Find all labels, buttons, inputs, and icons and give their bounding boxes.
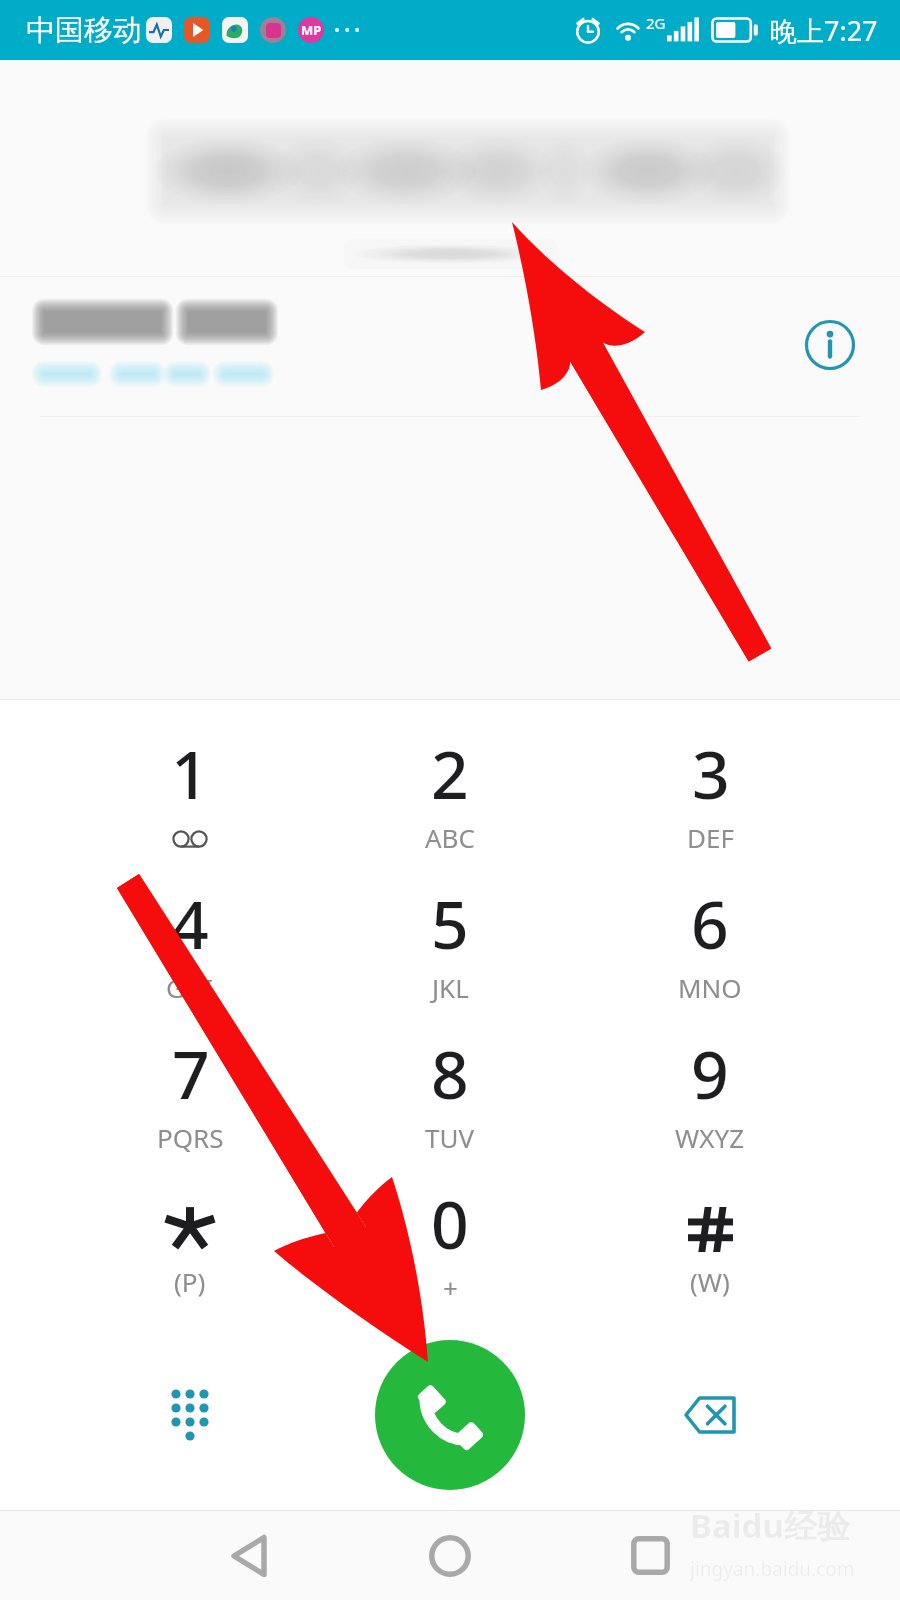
button[interactable]: Contact details (780, 295, 880, 395)
button[interactable]: 4 (60, 854, 320, 1004)
button[interactable]: (P) (60, 1154, 320, 1304)
staticText: JKL (432, 970, 469, 1005)
staticText: MP (301, 21, 322, 39)
staticText: GHI (166, 970, 214, 1005)
staticText: 3 (692, 728, 730, 818)
staticText: + (443, 1270, 458, 1305)
staticText: • • • (334, 19, 361, 41)
staticText: 6 (691, 878, 729, 968)
button[interactable]: 5 (320, 854, 580, 1004)
staticText: WXYZ (675, 1120, 745, 1155)
button[interactable]: 0 (320, 1154, 580, 1304)
button[interactable]: (W) (580, 1154, 840, 1304)
button[interactable]: Contact details (0, 277, 900, 412)
staticText: jingyan.baidu.com (690, 1556, 855, 1582)
staticText: MNO (678, 970, 742, 1005)
button[interactable]: Backspace (580, 1312, 840, 1518)
staticText: 晚上7:27 (770, 12, 878, 49)
button[interactable]: 1 (60, 704, 320, 854)
staticText: 中国移动 (26, 12, 142, 49)
staticText: ABC (425, 820, 475, 855)
staticText: Baidu经验 (690, 1503, 850, 1548)
button[interactable]: Home (349, 1511, 550, 1600)
staticText: (P) (174, 1264, 206, 1299)
staticText: 9 (691, 1028, 729, 1118)
staticText: 4 (171, 878, 209, 968)
staticText: 2 (431, 728, 469, 818)
button[interactable]: 6 (580, 854, 840, 1004)
staticText: 5 (431, 878, 469, 968)
staticText: 2G (646, 13, 666, 33)
button[interactable]: Back (149, 1511, 349, 1600)
button[interactable]: 2 (320, 704, 580, 854)
staticText: 0 (431, 1178, 469, 1268)
staticText: 8 (431, 1028, 469, 1118)
staticText: (W) (690, 1264, 730, 1299)
button[interactable]: 8 (320, 1004, 580, 1154)
button[interactable]: 3 (580, 704, 840, 854)
staticText: 7 (172, 1028, 210, 1118)
button[interactable]: Hide dialpad (60, 1312, 320, 1518)
staticText: TUV (425, 1120, 475, 1155)
staticText: 1 (171, 728, 209, 818)
button[interactable]: Call (375, 1340, 525, 1490)
staticText: PQRS (157, 1120, 224, 1155)
button[interactable]: Recent apps (550, 1511, 751, 1600)
button[interactable]: 7 (60, 1004, 320, 1154)
button[interactable]: 9 (580, 1004, 840, 1154)
staticText: DEF (687, 820, 734, 855)
